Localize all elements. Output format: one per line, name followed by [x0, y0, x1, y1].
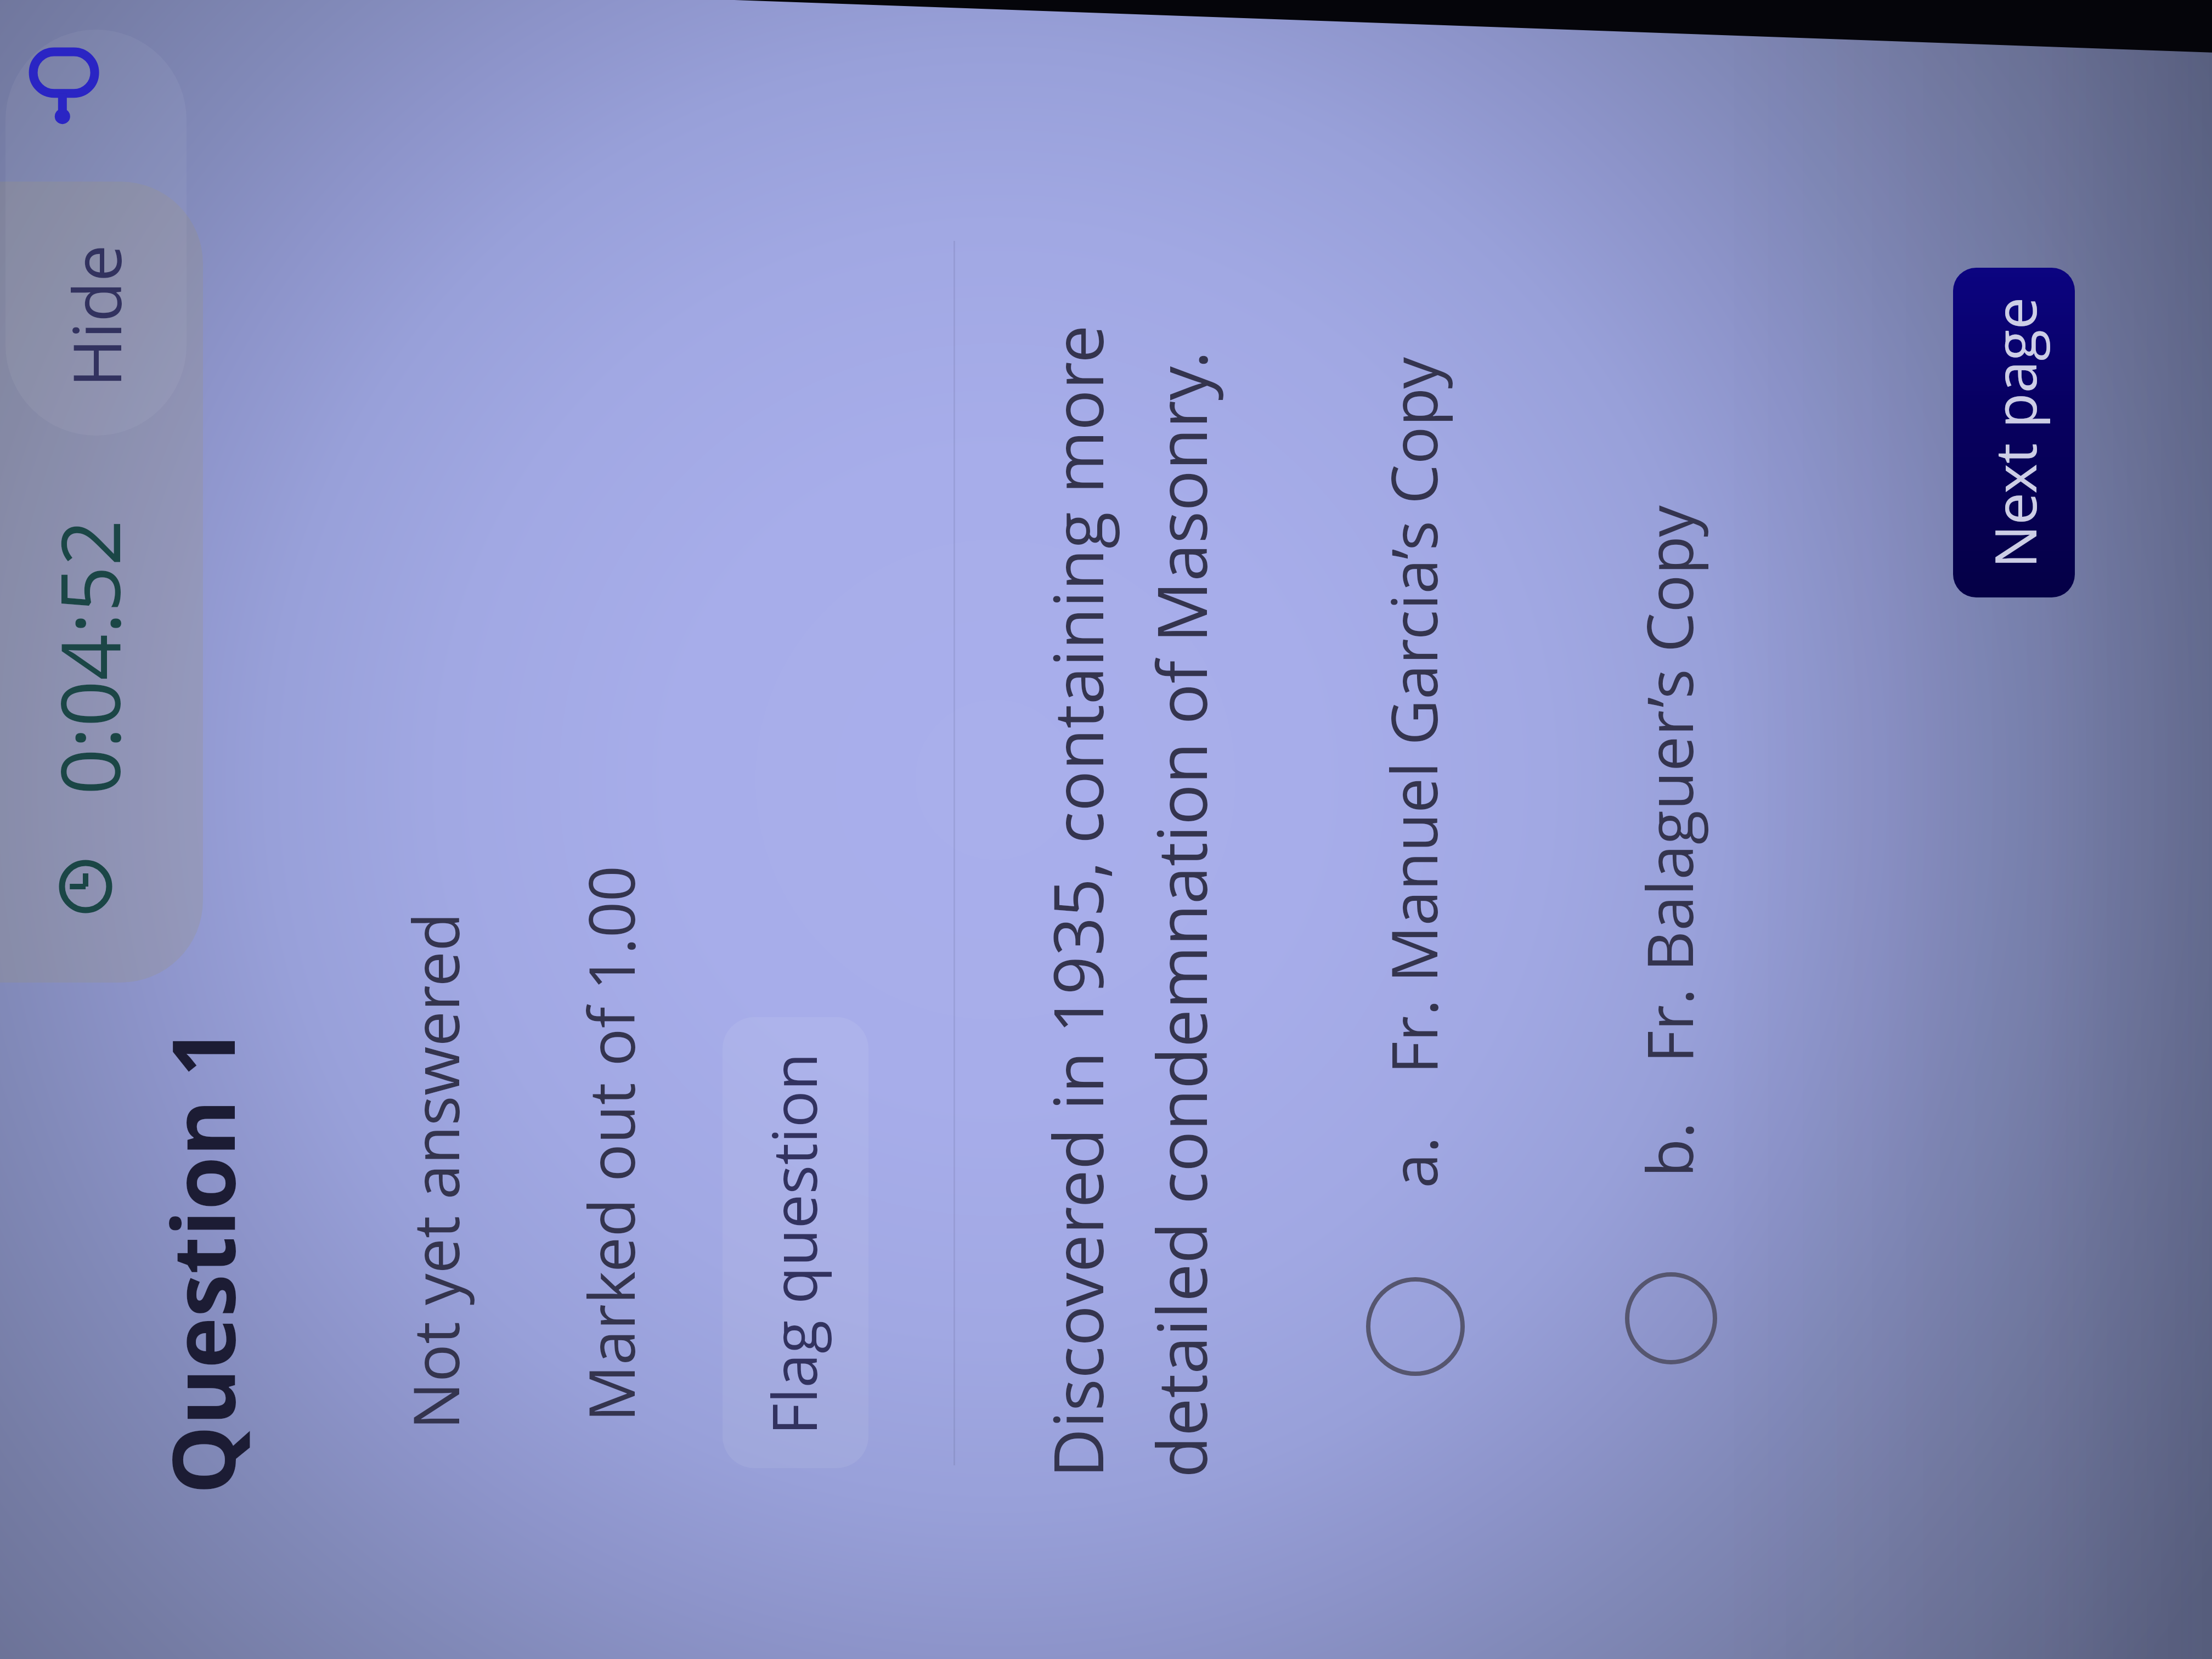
staticText: Next page: [1975, 297, 2053, 568]
staticText: Not yet answered: [392, 912, 478, 1430]
staticText: Question 1: [142, 1027, 260, 1494]
staticText: Discovered in 1935, containing more: [1030, 325, 1123, 1478]
staticText: Hide: [51, 245, 140, 387]
button[interactable]: Flag question: [723, 1017, 868, 1468]
button[interactable]: Bookmark: [27, 46, 110, 128]
button[interactable]: Quiz timer 0:04:52: [0, 182, 203, 983]
staticText: Fr. Balaguer’s Copy: [1626, 505, 1712, 1063]
button[interactable]: Next page: [1953, 268, 2075, 597]
button[interactable]: [5, 30, 187, 436]
staticText: Marked out of 1.00: [567, 865, 653, 1422]
staticText: detailed condemnation of Masonry.: [1134, 351, 1227, 1478]
button[interactable]: Fr. Balaguer’s Copy: [1600, 399, 1742, 1387]
staticText: 0:04:52: [33, 520, 144, 795]
staticText: Fr. Manuel Garcia’s Copy: [1370, 357, 1456, 1074]
staticText: b.: [1626, 1121, 1712, 1177]
staticText: a.: [1370, 1136, 1456, 1188]
button[interactable]: Fr. Manuel Garcia’s Copy: [1344, 411, 1487, 1398]
staticText: Flag question: [751, 1053, 835, 1435]
